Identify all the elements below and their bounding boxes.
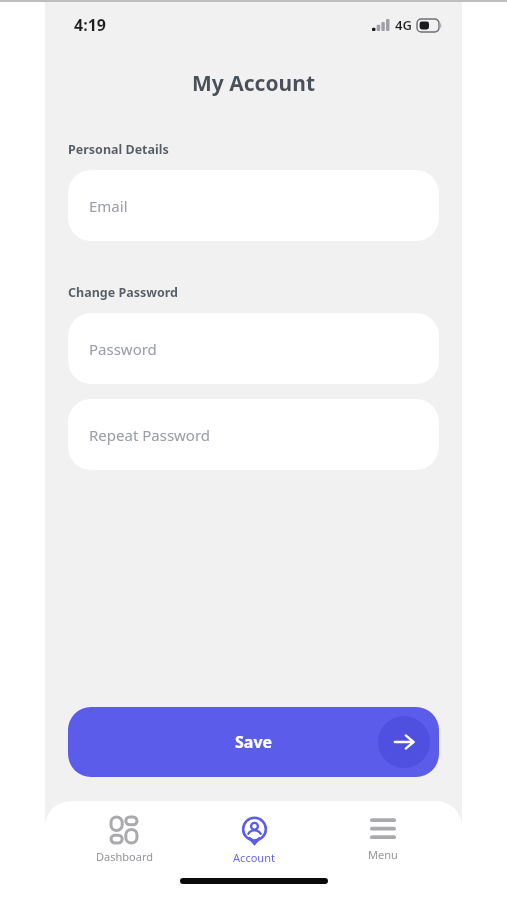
staticText: 4G	[395, 16, 412, 34]
staticText: Menu	[368, 847, 398, 862]
button[interactable]: Dashboard	[74, 811, 174, 870]
staticText: Dashboard	[96, 849, 153, 864]
staticText: Change Password	[68, 284, 178, 301]
button[interactable]: Account	[204, 811, 304, 871]
button[interactable]: Menu	[333, 811, 433, 868]
other: Submit	[378, 716, 430, 768]
staticText: Personal Details	[68, 141, 169, 158]
staticText: Password	[89, 339, 157, 359]
button[interactable]: Save	[68, 707, 439, 777]
button[interactable]: Password	[68, 313, 439, 384]
staticText: 4:19	[74, 14, 106, 36]
staticText: My Account	[192, 69, 315, 98]
button[interactable]: Email	[68, 170, 439, 241]
staticText: Email	[89, 196, 128, 216]
button[interactable]: Repeat Password	[68, 399, 439, 470]
staticText: Repeat Password	[89, 425, 211, 445]
staticText: Account	[233, 850, 275, 865]
staticText: Save	[235, 731, 273, 753]
